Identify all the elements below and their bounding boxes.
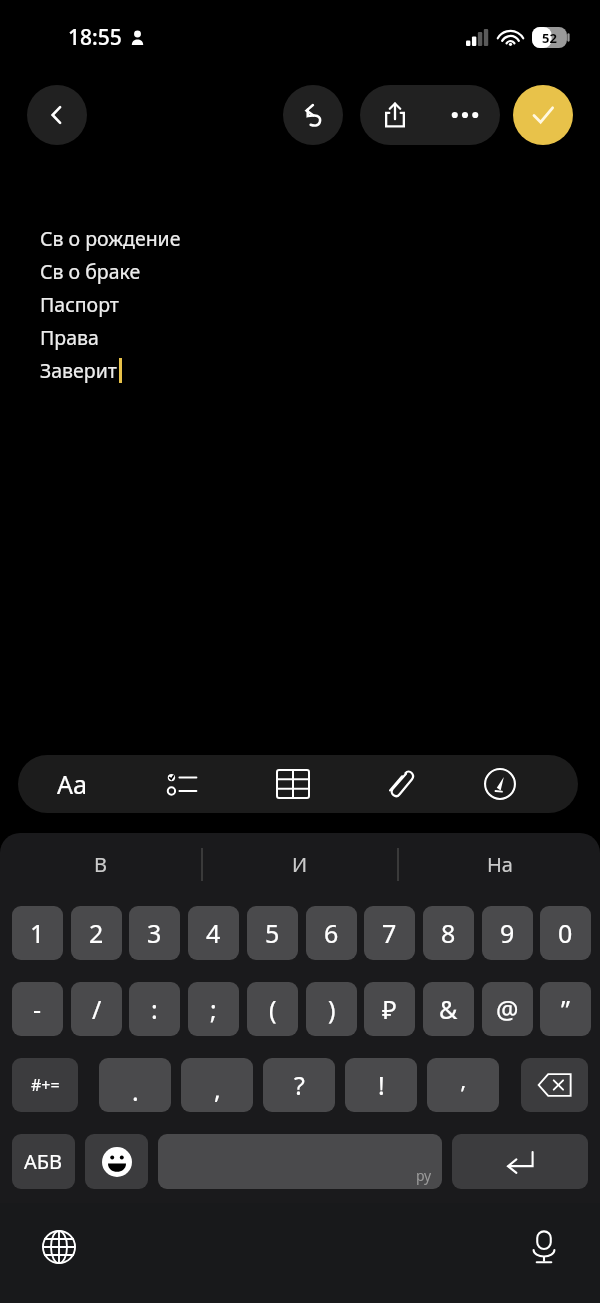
- button[interactable]: Back: [27, 85, 87, 145]
- button[interactable]: Change language: [30, 1218, 88, 1276]
- button[interactable]: Insert table: [253, 755, 333, 813]
- staticText: #+=: [31, 1074, 60, 1096]
- staticText: 9: [500, 916, 515, 950]
- button[interactable]: More options: [430, 85, 500, 145]
- staticText: На: [487, 851, 513, 878]
- button[interactable]: Emoji: [85, 1134, 148, 1189]
- button[interactable]: :: [129, 982, 180, 1036]
- button[interactable]: Checklist: [142, 755, 222, 813]
- staticText: (: [269, 992, 277, 1026]
- button[interactable]: .: [99, 1058, 171, 1112]
- button[interactable]: &: [423, 982, 474, 1036]
- staticText: :: [151, 992, 158, 1026]
- staticText: Св о рождение: [40, 225, 181, 252]
- button[interactable]: #+=: [12, 1058, 78, 1112]
- button[interactable]: ₽: [364, 982, 415, 1036]
- button[interactable]: 1: [12, 906, 63, 960]
- button[interactable]: 8: [423, 906, 474, 960]
- button[interactable]: (: [247, 982, 298, 1036]
- staticText: -: [33, 992, 42, 1026]
- staticText: 18:55: [68, 23, 122, 52]
- staticText: 1: [30, 916, 45, 950]
- button[interactable]: 6: [306, 906, 357, 960]
- staticText: /: [92, 992, 102, 1026]
- button[interactable]: 4: [188, 906, 239, 960]
- button[interactable]: -: [12, 982, 63, 1036]
- button[interactable]: 9: [482, 906, 533, 960]
- button[interactable]: ): [306, 982, 357, 1036]
- staticText: ’: [461, 1078, 465, 1108]
- staticText: АБВ: [24, 1148, 63, 1175]
- staticText: @: [496, 992, 519, 1026]
- staticText: Св о браке: [40, 258, 141, 285]
- button[interactable]: Aa: [32, 755, 112, 813]
- staticText: 5: [265, 916, 280, 950]
- button[interactable]: И: [200, 833, 400, 895]
- button[interactable]: 0: [540, 906, 591, 960]
- button[interactable]: ,: [181, 1058, 253, 1112]
- staticText: 2: [89, 916, 104, 950]
- button[interactable]: Enter: [452, 1134, 588, 1189]
- button[interactable]: Share: [360, 85, 430, 145]
- staticText: ₽: [382, 992, 397, 1026]
- staticText: Заверит: [40, 357, 117, 384]
- button[interactable]: Draw: [460, 755, 540, 813]
- staticText: 8: [441, 916, 456, 950]
- staticText: 7: [382, 916, 397, 950]
- staticText: 3: [147, 916, 162, 950]
- button[interactable]: Backspace: [521, 1058, 588, 1112]
- button[interactable]: 2: [71, 906, 122, 960]
- button[interactable]: В: [0, 833, 200, 895]
- button[interactable]: !: [345, 1058, 417, 1112]
- button[interactable]: Voice input: [515, 1218, 573, 1276]
- button[interactable]: Undo: [283, 85, 343, 145]
- staticText: 0: [558, 916, 573, 950]
- staticText: &: [439, 992, 458, 1026]
- button[interactable]: /: [71, 982, 122, 1036]
- staticText: 4: [206, 916, 221, 950]
- button[interactable]: @: [482, 982, 533, 1036]
- button[interactable]: 3: [129, 906, 180, 960]
- button[interactable]: ?: [263, 1058, 335, 1112]
- staticText: И: [292, 851, 308, 878]
- staticText: Aa: [57, 767, 88, 801]
- staticText: .: [132, 1074, 139, 1108]
- staticText: В: [94, 851, 107, 878]
- button[interactable]: 5: [247, 906, 298, 960]
- button[interactable]: На: [400, 833, 600, 895]
- staticText: Паспорт: [40, 291, 119, 318]
- button[interactable]: ”: [540, 982, 591, 1036]
- button[interactable]: Attach file: [359, 755, 439, 813]
- button[interactable]: Bold: [558, 755, 578, 813]
- staticText: ”: [561, 992, 570, 1026]
- staticText: ру: [416, 1166, 432, 1185]
- button[interactable]: ’: [427, 1058, 499, 1112]
- staticText: ;: [210, 992, 217, 1026]
- staticText: 6: [324, 916, 339, 950]
- staticText: ,: [214, 1072, 221, 1106]
- button[interactable]: Space: [158, 1134, 442, 1189]
- staticText: ): [328, 992, 336, 1026]
- staticText: ?: [294, 1068, 305, 1102]
- staticText: !: [378, 1068, 385, 1102]
- button[interactable]: Done: [513, 85, 573, 145]
- button[interactable]: 7: [364, 906, 415, 960]
- staticText: Права: [40, 324, 99, 351]
- staticText: 52: [542, 29, 557, 47]
- button[interactable]: АБВ: [12, 1134, 75, 1189]
- button[interactable]: ;: [188, 982, 239, 1036]
